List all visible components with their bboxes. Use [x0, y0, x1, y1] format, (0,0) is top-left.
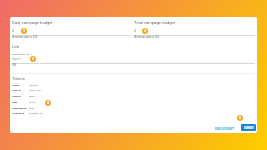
button[interactable]: Step 2	[142, 28, 148, 34]
staticText: https://	[12, 57, 22, 60]
staticText: Total campaign budget	[134, 20, 175, 25]
staticText: $	[134, 29, 136, 33]
staticText: Link	[12, 44, 20, 49]
staticText: 4	[47, 101, 49, 105]
staticText: {geo}	[29, 95, 35, 98]
staticText: 1	[23, 29, 25, 33]
staticText: *	[31, 53, 33, 56]
button[interactable]: Step 1	[21, 28, 27, 34]
staticText: URL	[12, 64, 17, 67]
button[interactable]: SAVE AS DRAFT	[212, 124, 238, 132]
staticText: 5	[239, 116, 241, 120]
staticText: Country	[12, 95, 21, 98]
staticText: $	[12, 29, 14, 33]
staticText: Cost	[12, 101, 18, 104]
staticText: Tokens	[12, 76, 25, 81]
staticText: 2	[144, 29, 146, 33]
staticText: Minimum value is $50	[134, 36, 160, 39]
button[interactable]: SUBMIT	[241, 124, 256, 131]
staticText: Source	[12, 84, 20, 87]
staticText: Daily campaign budget	[12, 20, 53, 25]
staticText: {cid}	[29, 107, 35, 110]
staticText: {cost}	[29, 101, 36, 104]
staticText: Minimum value is $10	[12, 36, 38, 39]
staticText: Click ID	[12, 89, 21, 92]
staticText: Creative ID	[12, 112, 25, 115]
button[interactable]: Step 5	[237, 115, 243, 121]
button[interactable]: Step 4	[45, 100, 51, 106]
staticText: SAVE AS DRAFT	[215, 127, 235, 130]
staticText: {creative_id}	[29, 112, 43, 115]
staticText: Campaign ID	[12, 107, 27, 110]
staticText: {{conv}}	[29, 84, 38, 87]
button[interactable]: Step 3	[30, 56, 36, 62]
staticText: 3	[32, 57, 34, 61]
staticText: {{click_id}}	[29, 89, 41, 92]
staticText: Destination URL	[12, 53, 31, 56]
staticText: SUBMIT	[244, 126, 254, 129]
